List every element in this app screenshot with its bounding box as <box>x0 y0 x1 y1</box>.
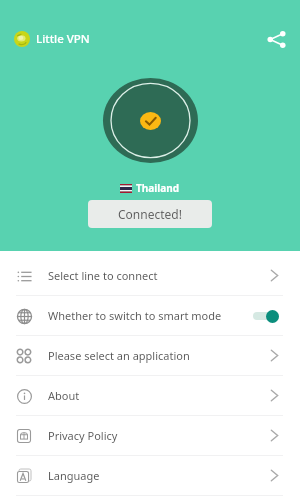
button[interactable]: Privacy Policy <box>0 416 300 456</box>
staticText: Connected! <box>118 206 182 222</box>
staticText: Please select an application <box>48 348 190 363</box>
staticText: Language <box>48 468 100 483</box>
button[interactable]: Language <box>0 456 300 496</box>
button[interactable]: Share <box>261 24 291 54</box>
staticText: Little VPN <box>36 31 90 47</box>
button[interactable]: Connected! <box>88 200 212 228</box>
staticText: Whether to switch to smart mode <box>48 308 222 323</box>
staticText: Thailand <box>136 181 180 195</box>
button[interactable]: About <box>0 376 300 416</box>
staticText: About <box>48 388 80 403</box>
staticText: Select line to connect <box>48 268 158 283</box>
button[interactable]: Please select an application <box>0 336 300 376</box>
button[interactable]: Select line to connect <box>0 256 300 296</box>
button[interactable]: Smart mode toggle <box>253 309 279 323</box>
button[interactable]: Whether to switch to smart mode <box>0 296 300 336</box>
button[interactable]: Connect <box>103 78 198 163</box>
staticText: Privacy Policy <box>48 428 118 443</box>
